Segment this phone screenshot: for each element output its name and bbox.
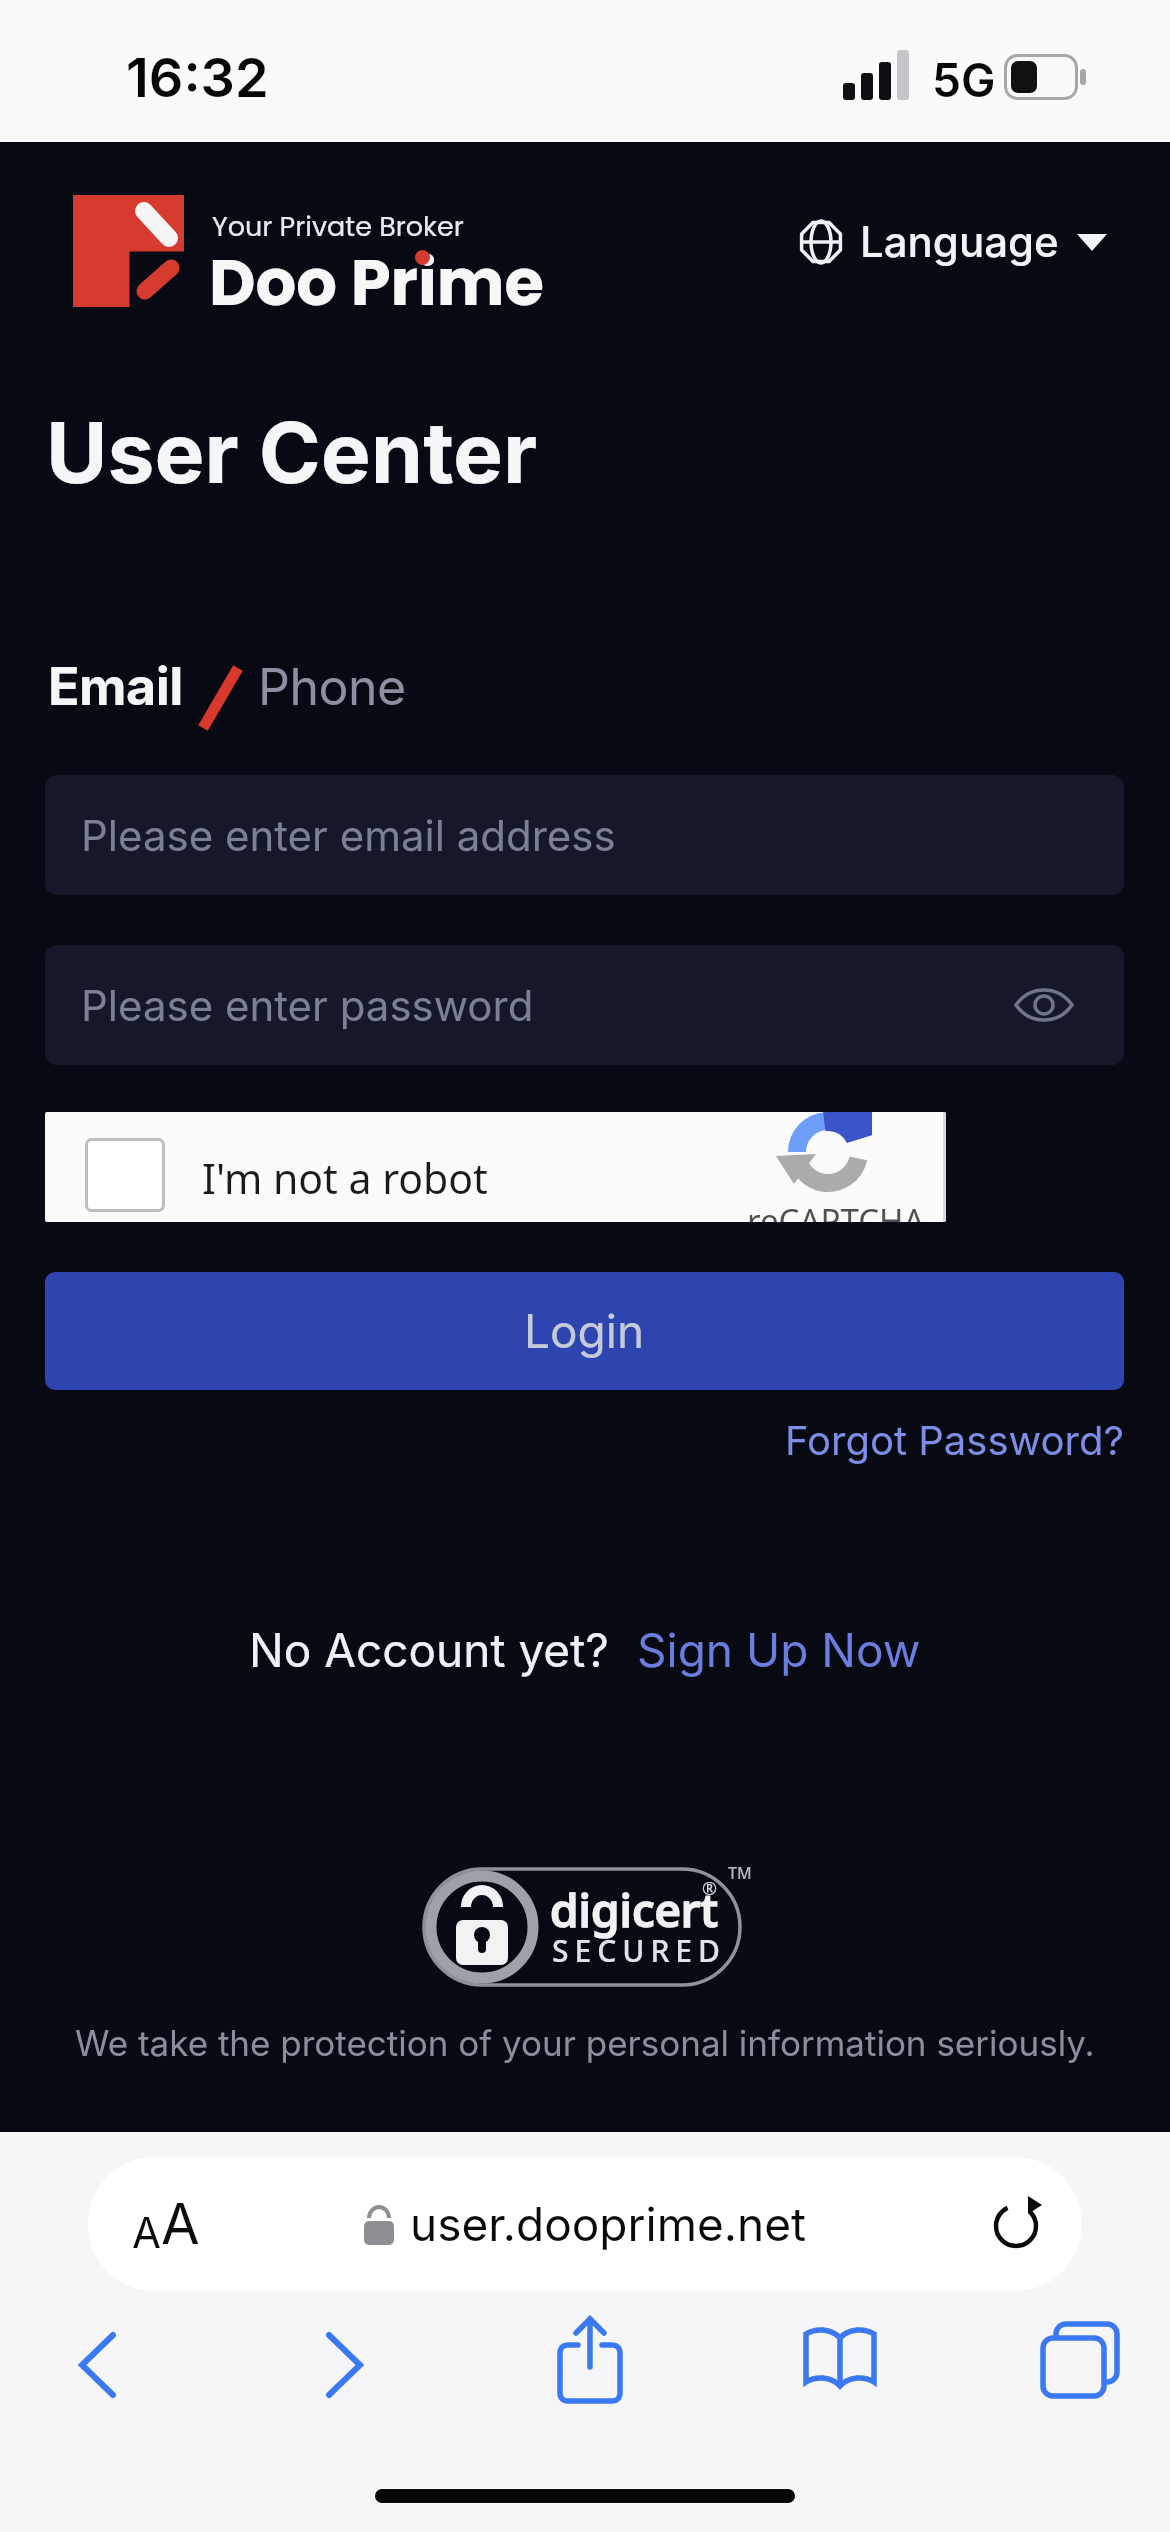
staticText: ® [702, 1876, 717, 1901]
staticText: A [161, 2190, 200, 2258]
staticText: No Account yet? [249, 1622, 609, 1678]
staticText: SECURED [552, 1930, 726, 1971]
button[interactable] [790, 2305, 890, 2415]
staticText: Phone [258, 657, 406, 717]
button[interactable] [52, 2310, 142, 2420]
staticText: Please enter email address [81, 810, 616, 861]
staticText: Doo Prime [209, 238, 545, 328]
button[interactable] [545, 2305, 635, 2415]
staticText: We take the protection of your personal … [75, 2022, 1095, 2064]
button[interactable]: Please enter email address [45, 775, 1124, 895]
button[interactable]: Sign Up Now [637, 1622, 921, 1678]
button[interactable]: I'm not a robot [45, 1112, 946, 1222]
staticText: user.dooprime.net [410, 2196, 807, 2252]
button[interactable]: A [88, 2157, 1082, 2291]
button[interactable]: Login [45, 1272, 1124, 1390]
button[interactable]: Please enter password [45, 945, 1124, 1065]
staticText: Please enter password [81, 980, 534, 1031]
button[interactable]: Phone [258, 657, 406, 717]
staticText: User Center [46, 402, 538, 504]
staticText: Forgot Password? [785, 1416, 1124, 1464]
staticText: TM [728, 1862, 752, 1884]
button[interactable] [1030, 2305, 1130, 2415]
button[interactable]: Language [790, 208, 1115, 275]
staticText: 16:32 [126, 45, 269, 110]
button[interactable]: Email [48, 655, 183, 718]
button[interactable]: Forgot Password? [785, 1416, 1124, 1464]
staticText: digicert [550, 1878, 718, 1941]
staticText: Sign Up Now [637, 1622, 921, 1678]
button[interactable] [300, 2310, 390, 2420]
staticText: Language [860, 216, 1059, 267]
staticText: I'm not a robot [202, 1150, 488, 1206]
staticText: 5G [932, 52, 996, 108]
staticText: reCAPTCHA [747, 1198, 925, 1222]
staticText: A [132, 2207, 161, 2258]
staticText: Login [524, 1303, 645, 1359]
staticText: Your Private Broker [212, 208, 464, 246]
staticText: Email [48, 655, 183, 718]
